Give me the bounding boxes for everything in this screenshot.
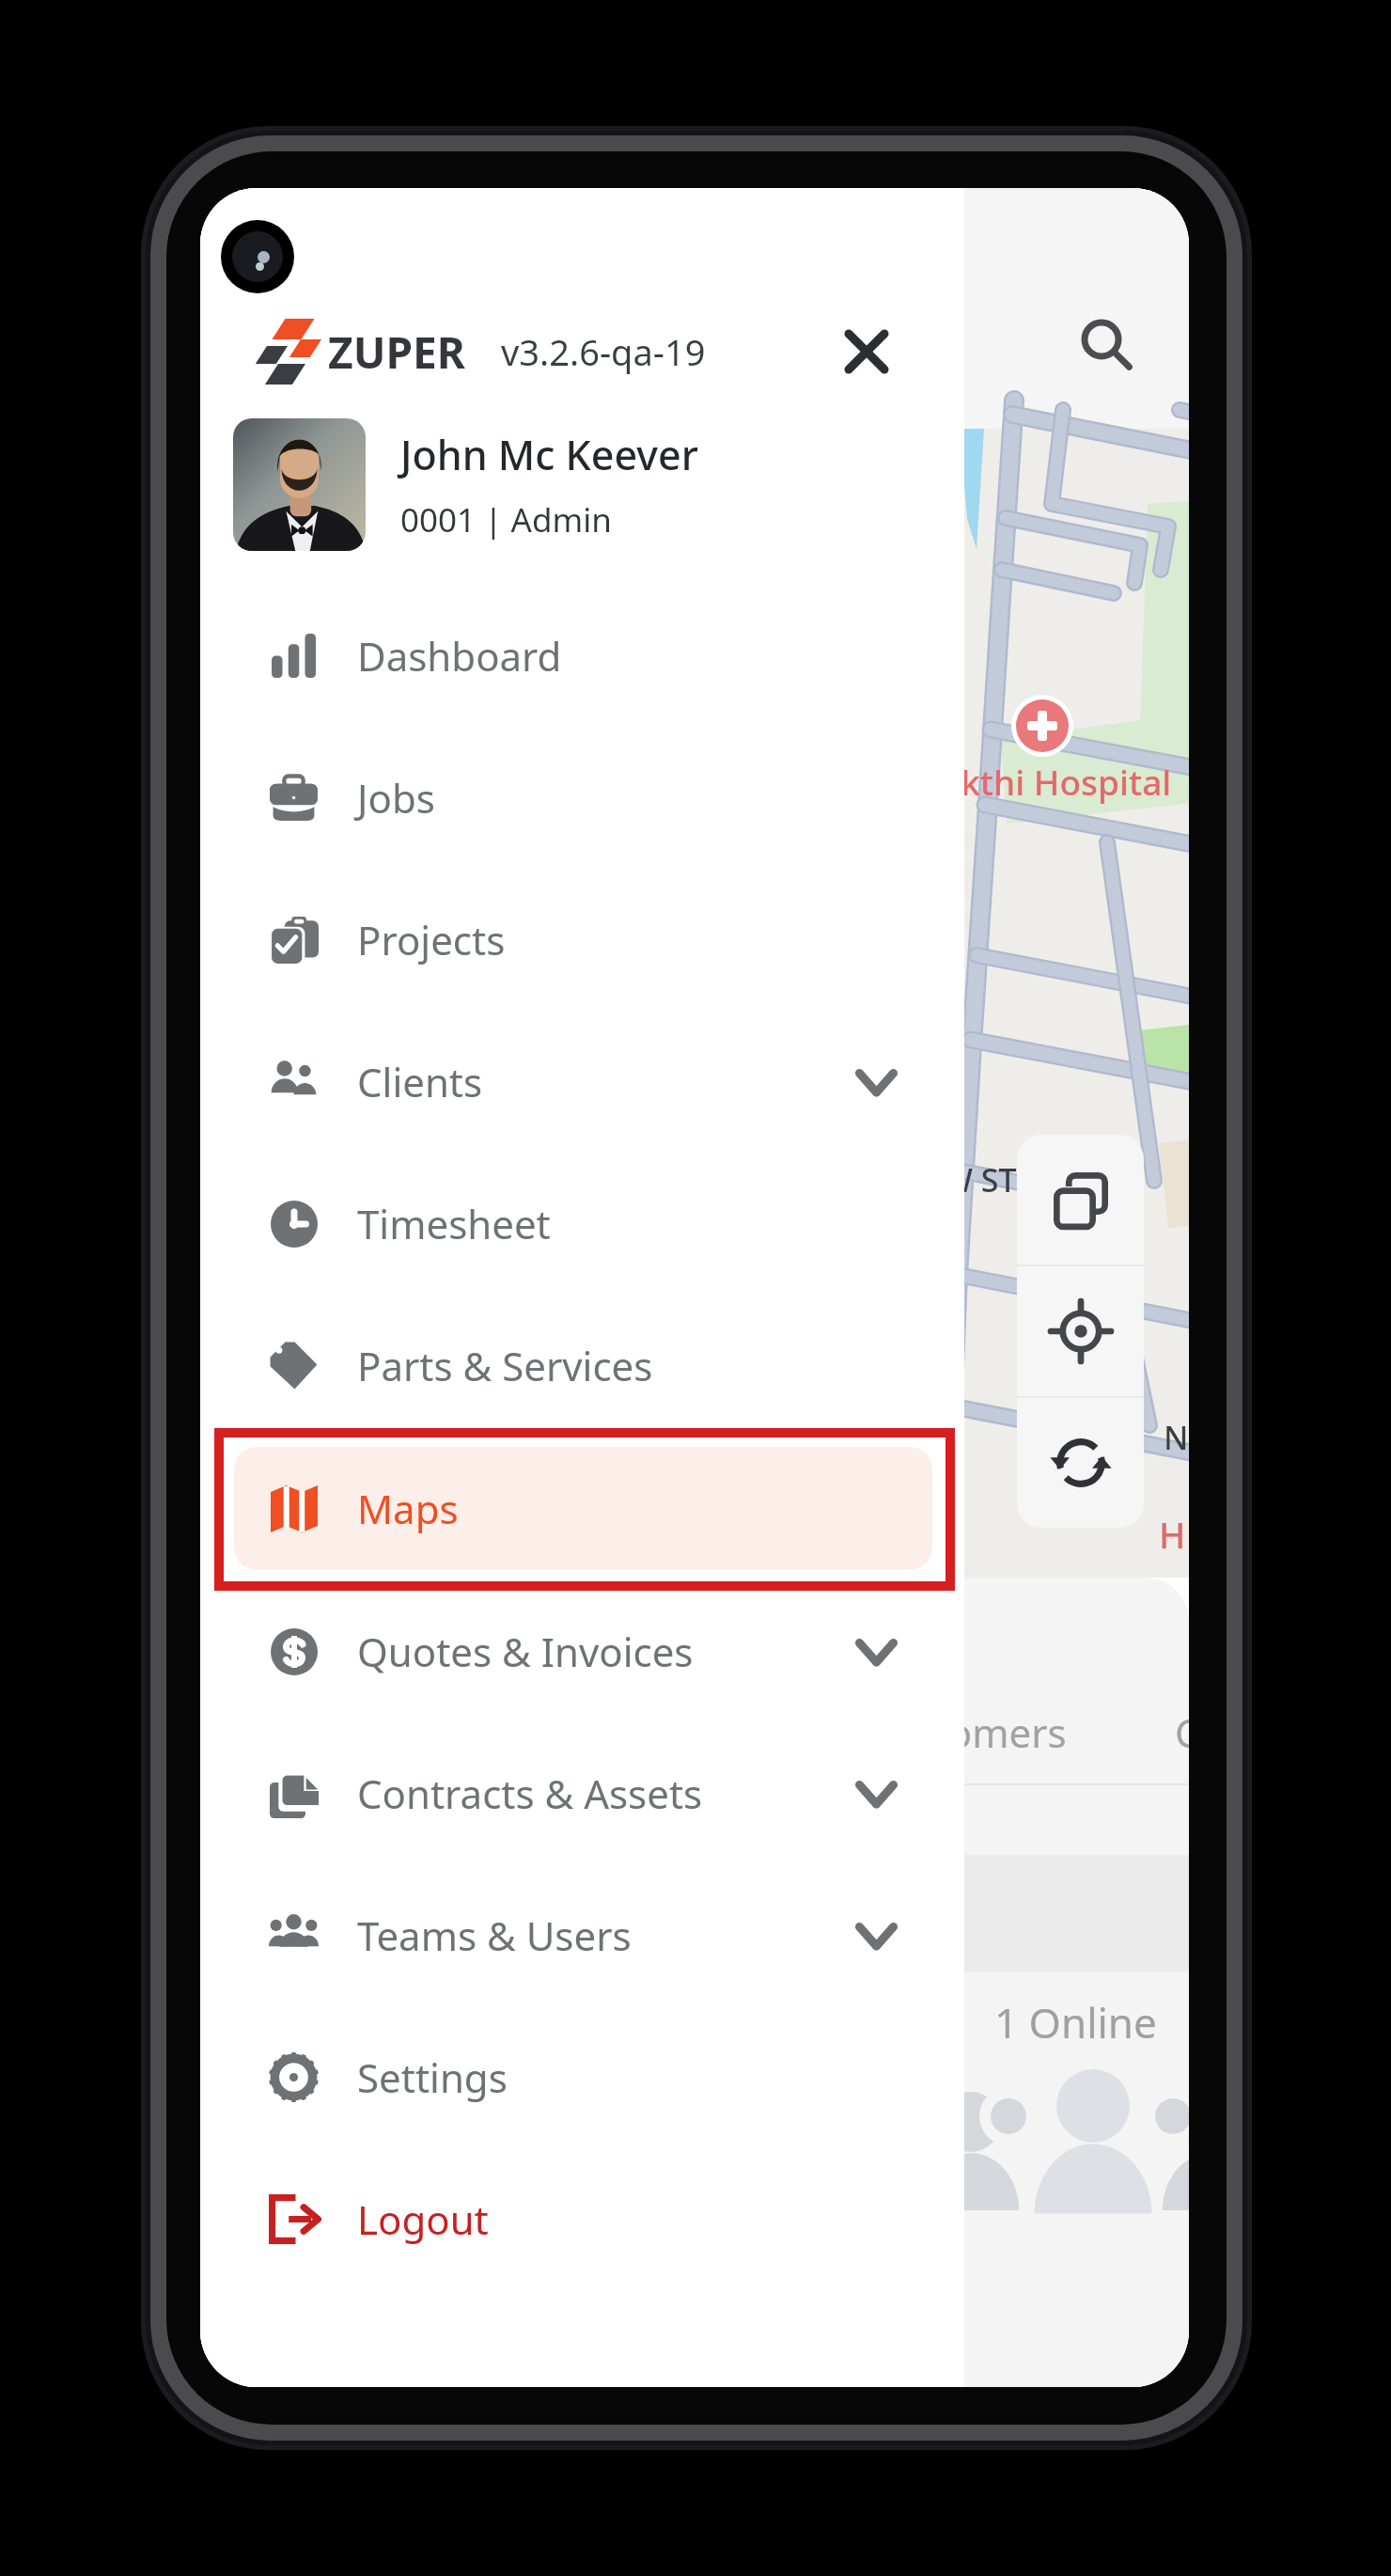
button[interactable]: Close drawer <box>815 311 918 392</box>
staticText: Settings <box>357 2050 508 2104</box>
button[interactable]: Clients <box>200 1011 964 1153</box>
button[interactable]: Quotes & Invoices <box>200 1580 964 1722</box>
button[interactable]: Projects <box>200 869 964 1011</box>
button[interactable]: Customers <box>858 1698 1074 1767</box>
button[interactable]: Maps <box>234 1447 932 1570</box>
staticText: John Mc Keever <box>400 427 698 482</box>
staticText: Clients <box>357 1055 483 1108</box>
staticText: Contracts & Assets <box>357 1767 703 1820</box>
staticText: ZUPER <box>328 322 465 382</box>
button[interactable]: Search crew <box>802 1855 1189 1971</box>
button[interactable]: Logout <box>200 2148 964 2290</box>
staticText: 1 Online <box>994 1994 1157 2050</box>
button[interactable]: Teams & Users <box>200 1864 964 2006</box>
button[interactable]: Parts & Services <box>200 1295 964 1437</box>
staticText: W ST <box>943 1158 1017 1202</box>
staticText: Quotes & Invoices <box>357 1625 694 1678</box>
staticText: Teams & Users <box>357 1908 632 1962</box>
staticText: Logout <box>357 2192 489 2246</box>
button[interactable]: Settings <box>200 2006 964 2148</box>
staticText: N <box>1164 1416 1189 1459</box>
staticText: Crew <box>1175 1705 1189 1759</box>
staticText: Timesheet <box>357 1197 551 1250</box>
staticText: v3.2.6-qa-19 <box>501 327 706 376</box>
button[interactable]: Timesheet <box>200 1153 964 1295</box>
staticText: Projects <box>357 913 506 966</box>
button[interactable]: My location <box>1017 1266 1144 1396</box>
staticText: Maps <box>357 1482 459 1535</box>
button[interactable]: Contracts & Assets <box>200 1722 964 1864</box>
button[interactable]: Dashboard <box>200 585 964 727</box>
staticText: Jobs <box>357 771 435 825</box>
staticText: Dashboard <box>357 629 562 683</box>
button[interactable]: Crew <box>1167 1698 1189 1767</box>
staticText: Parts & Services <box>357 1339 653 1392</box>
staticText: 0001 | Admin <box>400 497 612 542</box>
button[interactable]: Search <box>1056 296 1160 400</box>
button[interactable]: John Mc Keever <box>233 418 964 551</box>
staticText: akthi Hospital <box>941 758 1172 805</box>
button[interactable]: Jobs <box>200 727 964 869</box>
button[interactable]: Refresh <box>1017 1398 1144 1528</box>
button[interactable]: Map layers <box>1017 1135 1144 1264</box>
staticText: Customers <box>866 1705 1067 1759</box>
staticText: H <box>1159 1510 1186 1559</box>
